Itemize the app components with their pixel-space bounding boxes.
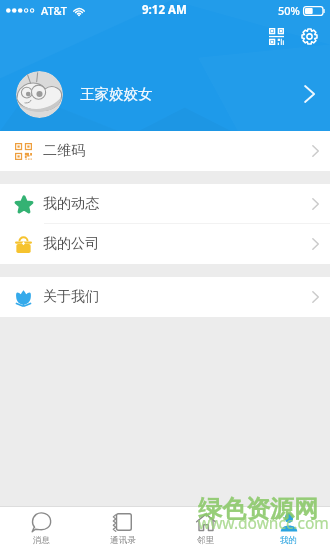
staticText: 50% <box>278 3 300 18</box>
staticText: 我的 <box>280 535 297 546</box>
staticText: 邻里 <box>197 535 214 546</box>
button[interactable]: Scan QR code <box>263 23 289 49</box>
staticText: 我的动态 <box>43 195 99 213</box>
button[interactable]: 消息 <box>0 507 82 550</box>
button[interactable]: 王家姣姣女 <box>0 66 330 122</box>
staticText: www.downcc.com <box>198 512 329 533</box>
staticText: AT&T <box>41 3 68 18</box>
staticText: 消息 <box>33 535 50 546</box>
staticText: 9:12 AM <box>142 2 187 18</box>
button[interactable]: Settings <box>296 23 322 49</box>
staticText: 王家姣姣女 <box>80 85 153 103</box>
button[interactable]: 我的公司 <box>0 224 330 264</box>
staticText: 通讯录 <box>110 535 136 546</box>
staticText: 我的公司 <box>43 235 99 253</box>
button[interactable]: 二维码 <box>0 131 330 171</box>
staticText: 关于我们 <box>43 288 99 306</box>
button[interactable]: 我的 <box>247 507 330 550</box>
staticText: 二维码 <box>43 142 85 160</box>
button[interactable]: 通讯录 <box>82 507 164 550</box>
button[interactable]: 关于我们 <box>0 277 330 317</box>
button[interactable]: 我的动态 <box>0 184 330 224</box>
button[interactable]: 邻里 <box>164 507 247 550</box>
staticText: 绿色资源网 <box>198 494 318 524</box>
